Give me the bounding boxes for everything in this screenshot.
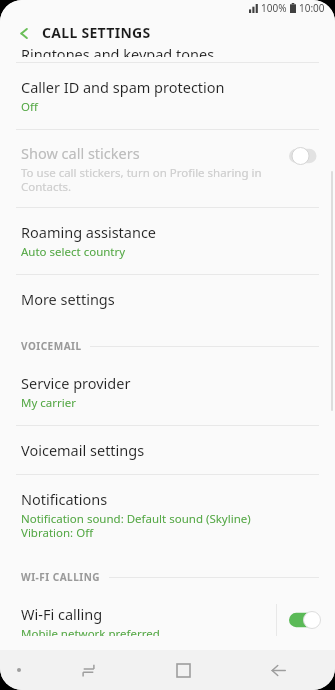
staticText: More settings <box>21 289 115 309</box>
button[interactable]: Roaming assistance <box>0 208 335 274</box>
button[interactable]: Toggle on <box>289 611 321 629</box>
button[interactable]: More settings <box>0 275 335 323</box>
staticText: VOICEMAIL <box>21 339 82 353</box>
staticText: Service provider <box>21 373 131 393</box>
button[interactable]: Notifications <box>0 475 335 554</box>
staticText: Caller ID and spam protection <box>21 77 225 97</box>
button[interactable]: Voicemail settings <box>0 426 335 474</box>
button[interactable]: Back <box>10 19 38 47</box>
staticText: 100% <box>261 1 287 15</box>
button[interactable]: Home <box>163 650 203 690</box>
staticText: Auto select country <box>21 244 126 260</box>
staticText: My carrier <box>21 395 76 411</box>
staticText: Mobile network preferred <box>21 626 160 636</box>
staticText: Notifications <box>21 489 108 509</box>
staticText: Roaming assistance <box>21 222 157 242</box>
button[interactable]: Show call stickers <box>0 130 335 207</box>
button[interactable]: Ringtones and keypad tones <box>0 49 335 62</box>
staticText: To use call stickers, turn on Profile sh… <box>21 165 262 194</box>
button[interactable]: Recents <box>68 650 108 690</box>
staticText: Ringtones and keypad tones <box>21 44 215 57</box>
staticText: Notification sound: Default sound (Skyli… <box>21 511 251 540</box>
button[interactable]: Service provider <box>0 359 335 425</box>
staticText: Off <box>21 99 38 115</box>
staticText: 10:00 <box>299 1 325 15</box>
staticText: WI-FI CALLING <box>21 570 101 584</box>
staticText: Voicemail settings <box>21 440 145 460</box>
staticText: CALL SETTINGS <box>42 23 151 42</box>
button[interactable]: Caller ID and spam protection <box>0 63 335 129</box>
staticText: Show call stickers <box>21 143 140 163</box>
button[interactable]: Toggle off <box>289 147 321 165</box>
staticText: Wi-Fi calling <box>21 604 103 624</box>
button[interactable]: Wi-Fi calling <box>0 590 335 650</box>
button[interactable]: Back <box>258 650 298 690</box>
